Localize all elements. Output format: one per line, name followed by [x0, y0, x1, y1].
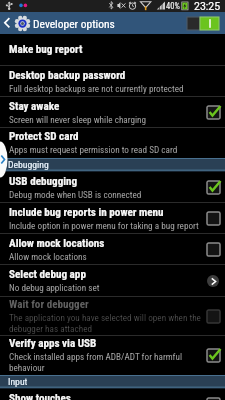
button[interactable]: On — [207, 106, 220, 119]
staticText: Include option in power menu for taking … — [9, 220, 199, 231]
staticText: Desktop backup password — [9, 69, 126, 82]
staticText: Include bug reports in power menu — [9, 206, 164, 219]
staticText: Debugging — [8, 159, 49, 170]
staticText: Allow mock locations — [9, 251, 87, 262]
button[interactable]: Verify apps via USB — [0, 336, 225, 375]
staticText: The application you have selected will o… — [9, 312, 201, 323]
staticText: Apps must request permission to read SD … — [9, 144, 178, 155]
staticText: 40% — [166, 1, 180, 11]
button[interactable]: Off — [207, 310, 220, 323]
staticText: Wait for debugger — [9, 298, 89, 311]
button[interactable]: Stay awake — [0, 97, 225, 128]
button[interactable]: Select debug app — [0, 265, 225, 297]
staticText: Screen will never sleep while charging — [9, 114, 147, 125]
staticText: behaviour — [9, 362, 45, 373]
button[interactable]: Off — [207, 243, 220, 256]
button[interactable]: Show touches — [0, 389, 225, 400]
staticText: Make bug report — [9, 43, 83, 56]
staticText: debugger has attached — [9, 323, 93, 334]
staticText: Verify apps via USB — [9, 337, 97, 350]
button[interactable]: Navigate up — [0, 12, 225, 34]
button[interactable]: Developer options on — [187, 17, 219, 30]
button[interactable]: Wait for debugger — [0, 297, 225, 336]
staticText: USB debugging — [9, 175, 78, 188]
button[interactable]: On — [207, 349, 220, 362]
button[interactable]: Allow mock locations — [0, 234, 225, 265]
staticText: Select debug app — [9, 268, 86, 281]
staticText: Check installed apps from ADB/ADT for ha… — [9, 351, 183, 362]
button[interactable]: Debugging — [0, 158, 225, 172]
button[interactable]: Protect SD card — [0, 128, 225, 158]
staticText: Full desktop backups are not currently p… — [9, 83, 184, 94]
button[interactable]: Off — [207, 398, 220, 400]
staticText: Protect SD card — [9, 130, 79, 143]
staticText: Input — [8, 376, 28, 387]
staticText: No debug application set — [9, 282, 100, 293]
button[interactable]: USB debugging — [0, 172, 225, 203]
button[interactable]: Select debug app — [207, 275, 219, 287]
staticText: 23:25 — [194, 0, 221, 12]
button[interactable]: Off — [207, 212, 220, 225]
staticText: Developer options — [33, 17, 115, 30]
staticText: Allow mock locations — [9, 237, 105, 250]
staticText: Debug mode when USB is connected — [9, 189, 142, 200]
button[interactable]: Include bug reports in power menu — [0, 203, 225, 234]
staticText: Stay awake — [9, 100, 60, 113]
button[interactable]: Desktop backup password — [0, 66, 225, 97]
button[interactable]: Input — [0, 375, 225, 389]
button[interactable]: Make bug report — [0, 34, 225, 66]
button[interactable]: On — [207, 181, 220, 194]
staticText: Show touches — [9, 392, 71, 400]
